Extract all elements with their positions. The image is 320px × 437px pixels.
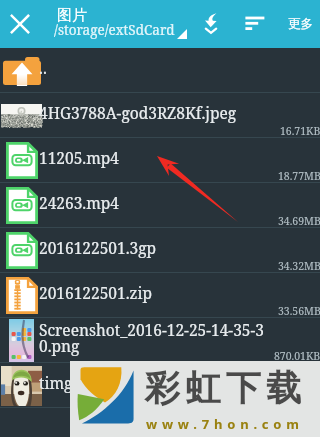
button[interactable]: .. <box>0 48 320 93</box>
button[interactable]: 2016122501.zip <box>0 273 320 318</box>
staticText: Screenshot_2016-12-25-14-35-3 0.png <box>39 319 264 357</box>
staticText: 24263.mp4 <box>39 192 120 213</box>
staticText: timg.jpg <box>39 372 99 393</box>
staticText: 16.71KB <box>280 124 320 138</box>
button[interactable]: timg.jpg <box>0 363 320 408</box>
button[interactable]: 2016122501.3gp <box>0 228 320 273</box>
staticText: 2016122501.3gp <box>39 237 157 258</box>
button[interactable]: 4HG3788A-god3RZ8Kf.jpeg <box>0 93 320 138</box>
staticText: 更多 <box>288 16 313 32</box>
staticText: 11205.mp4 <box>39 147 120 168</box>
staticText: 34.32MB <box>278 259 320 273</box>
staticText: 870.01KB <box>274 349 320 363</box>
staticText: 4HG3788A-god3RZ8Kf.jpeg <box>39 102 237 123</box>
button[interactable]: 24263.mp4 <box>0 183 320 228</box>
button[interactable]: Sort <box>235 6 271 42</box>
staticText: 33.56MB <box>278 304 320 318</box>
button[interactable]: 11205.mp4 <box>0 138 320 183</box>
staticText: 18.77MB <box>278 169 320 183</box>
button[interactable]: Close <box>3 7 37 41</box>
button[interactable]: Download <box>193 6 229 42</box>
staticText: 34.69MB <box>278 214 320 228</box>
staticText: 彩虹下载 <box>142 366 304 410</box>
staticText: 图片 <box>57 6 87 25</box>
staticText: 2016122501.zip <box>39 282 152 303</box>
staticText: .. <box>39 57 47 78</box>
staticText: /storage/extSdCard <box>54 21 175 39</box>
button[interactable]: Screenshot_2016-12-25-14-35-3 0.png <box>0 318 320 363</box>
staticText: www.7hon.com <box>146 415 304 433</box>
button[interactable]: 更多 <box>280 0 320 48</box>
